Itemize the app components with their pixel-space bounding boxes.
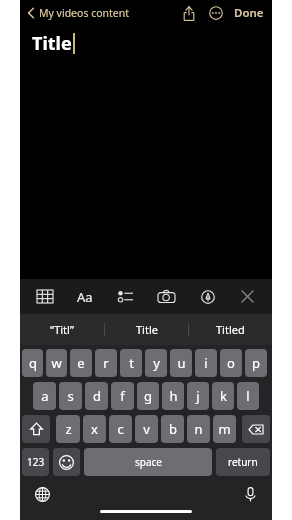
staticText: k xyxy=(220,387,227,405)
button[interactable]: j xyxy=(187,382,209,410)
button[interactable]: p xyxy=(245,349,267,377)
button[interactable]: k xyxy=(212,382,234,410)
staticText: Done xyxy=(234,5,264,21)
staticText: b xyxy=(169,420,177,438)
button[interactable]: m xyxy=(213,415,236,443)
button[interactable]: Insert table xyxy=(28,279,61,314)
button[interactable]: Text formatting xyxy=(68,279,101,314)
staticText: j xyxy=(196,387,200,405)
staticText: c xyxy=(117,420,124,438)
staticText: Title xyxy=(32,31,72,56)
button[interactable]: x xyxy=(83,415,106,443)
staticText: v xyxy=(143,420,150,438)
button[interactable]: Change keyboard xyxy=(31,483,53,505)
staticText: d xyxy=(93,387,101,405)
staticText: n xyxy=(194,420,203,438)
button[interactable]: n xyxy=(187,415,210,443)
button[interactable]: s xyxy=(59,382,82,410)
staticText: y xyxy=(153,354,160,372)
button[interactable]: Camera xyxy=(150,279,183,314)
button[interactable]: My videos content xyxy=(25,3,132,23)
button[interactable]: c xyxy=(109,415,132,443)
staticText: i xyxy=(204,354,208,372)
button[interactable]: o xyxy=(220,349,242,377)
button[interactable]: i xyxy=(195,349,217,377)
button[interactable]: Done xyxy=(231,1,267,25)
button[interactable]: space xyxy=(84,448,212,476)
staticText: space xyxy=(135,455,162,469)
staticText: e xyxy=(77,354,85,372)
button[interactable]: g xyxy=(137,382,159,410)
staticText: return xyxy=(228,455,258,469)
button[interactable]: Emoji xyxy=(53,448,80,476)
staticText: w xyxy=(51,354,62,372)
staticText: q xyxy=(29,354,37,372)
button[interactable]: Hide keyboard xyxy=(231,279,264,314)
staticText: 123 xyxy=(27,455,45,469)
button[interactable]: Markup xyxy=(191,279,224,314)
button[interactable]: v xyxy=(135,415,158,443)
staticText: u xyxy=(177,354,186,372)
staticText: Titled xyxy=(216,322,245,337)
staticText: My videos content xyxy=(39,6,130,20)
button[interactable]: f xyxy=(111,382,134,410)
staticText: o xyxy=(227,354,235,372)
button[interactable]: Dictation xyxy=(239,483,261,505)
button[interactable]: More options xyxy=(205,2,227,24)
button[interactable]: b xyxy=(161,415,184,443)
staticText: Aa xyxy=(77,288,93,306)
button[interactable]: Shift xyxy=(22,415,50,443)
button[interactable]: Title xyxy=(105,314,188,345)
button[interactable]: q xyxy=(22,349,43,377)
button[interactable]: return xyxy=(216,448,270,476)
button[interactable]: r xyxy=(95,349,117,377)
button[interactable]: Titled xyxy=(189,314,272,345)
button[interactable]: e xyxy=(70,349,92,377)
button[interactable]: d xyxy=(85,382,108,410)
button[interactable]: “Titl” xyxy=(20,314,104,345)
button[interactable]: h xyxy=(162,382,184,410)
button[interactable]: 123 xyxy=(22,448,49,476)
staticText: h xyxy=(169,387,178,405)
staticText: Title xyxy=(136,322,158,337)
button[interactable]: l xyxy=(237,382,259,410)
staticText: z xyxy=(65,420,72,438)
staticText: p xyxy=(252,354,260,372)
button[interactable]: Share xyxy=(177,1,201,25)
button[interactable]: t xyxy=(120,349,142,377)
staticText: t xyxy=(129,354,134,372)
staticText: l xyxy=(246,387,250,405)
button[interactable]: y xyxy=(145,349,167,377)
staticText: a xyxy=(41,387,49,405)
button[interactable]: z xyxy=(56,415,80,443)
staticText: s xyxy=(67,387,74,405)
button[interactable]: u xyxy=(170,349,192,377)
button[interactable]: a xyxy=(33,382,56,410)
staticText: “Titl” xyxy=(50,322,74,337)
button[interactable]: w xyxy=(46,349,67,377)
button[interactable]: Checklist xyxy=(109,279,142,314)
staticText: x xyxy=(91,420,98,438)
staticText: m xyxy=(218,420,231,438)
staticText: g xyxy=(144,387,152,405)
staticText: f xyxy=(120,387,125,405)
staticText: r xyxy=(103,354,109,372)
button[interactable]: Backspace xyxy=(242,415,270,443)
